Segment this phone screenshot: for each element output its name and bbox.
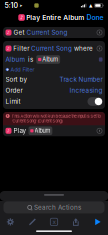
staticText: 5:10 bbox=[4, 1, 18, 10]
button[interactable]: Settings bbox=[0, 213, 21, 230]
staticText: ⌄ bbox=[86, 15, 90, 20]
staticText: Play Entire Album bbox=[26, 13, 84, 22]
staticText: ♪ bbox=[20, 14, 23, 21]
staticText: ▲ bbox=[89, 3, 92, 8]
staticText: Current Song bbox=[26, 29, 67, 36]
staticText: Play bbox=[13, 127, 26, 135]
staticText: Album bbox=[5, 56, 24, 63]
button[interactable]: Done bbox=[84, 11, 105, 24]
staticText: Order bbox=[5, 87, 22, 94]
button[interactable]: Run bbox=[87, 213, 108, 230]
staticText: Increasing bbox=[69, 87, 102, 94]
staticText: Album bbox=[42, 56, 58, 63]
button[interactable]: ♪ bbox=[18, 13, 90, 22]
staticText: where bbox=[74, 45, 93, 52]
staticText: Track Number bbox=[59, 76, 102, 83]
staticText: Search Actions bbox=[34, 204, 81, 211]
button[interactable]: Share bbox=[65, 213, 87, 230]
button[interactable]: Action options bbox=[96, 29, 102, 35]
staticText: This Action Will Not Run Because the Inp… bbox=[11, 114, 100, 123]
button[interactable]: Edit bbox=[21, 213, 43, 230]
staticText: Filter bbox=[13, 45, 29, 52]
button[interactable]: + bbox=[5, 66, 34, 73]
staticText: is bbox=[28, 56, 33, 63]
staticText: ♪ bbox=[7, 46, 10, 51]
staticText: ! bbox=[7, 114, 9, 118]
button[interactable]: Sort by bbox=[5, 74, 102, 85]
staticText: + bbox=[6, 67, 9, 72]
button[interactable]: ♪ bbox=[3, 125, 105, 136]
button[interactable]: Search Actions bbox=[3, 201, 104, 213]
staticText: Album bbox=[34, 127, 50, 134]
staticText: Sort by bbox=[5, 76, 27, 83]
button[interactable]: Order bbox=[5, 85, 102, 96]
staticText: Limit bbox=[5, 98, 20, 105]
button[interactable]: Limit bbox=[87, 97, 102, 106]
button[interactable]: Album bbox=[5, 56, 24, 63]
staticText: ♪ bbox=[7, 30, 10, 35]
staticText: x bbox=[52, 218, 55, 225]
staticText: Add Filter bbox=[10, 66, 34, 73]
button[interactable]: Variables bbox=[43, 213, 65, 230]
button[interactable]: ♪ bbox=[3, 27, 105, 38]
staticText: Get bbox=[13, 29, 24, 36]
staticText: Done bbox=[86, 13, 103, 22]
staticText: ♪ bbox=[7, 128, 10, 133]
button[interactable]: Action options bbox=[96, 45, 102, 51]
staticText: ➤ bbox=[19, 3, 22, 8]
button[interactable]: Action options bbox=[96, 128, 102, 134]
button[interactable]: Remove filter bbox=[99, 57, 102, 62]
staticText: Current Song bbox=[31, 45, 72, 52]
